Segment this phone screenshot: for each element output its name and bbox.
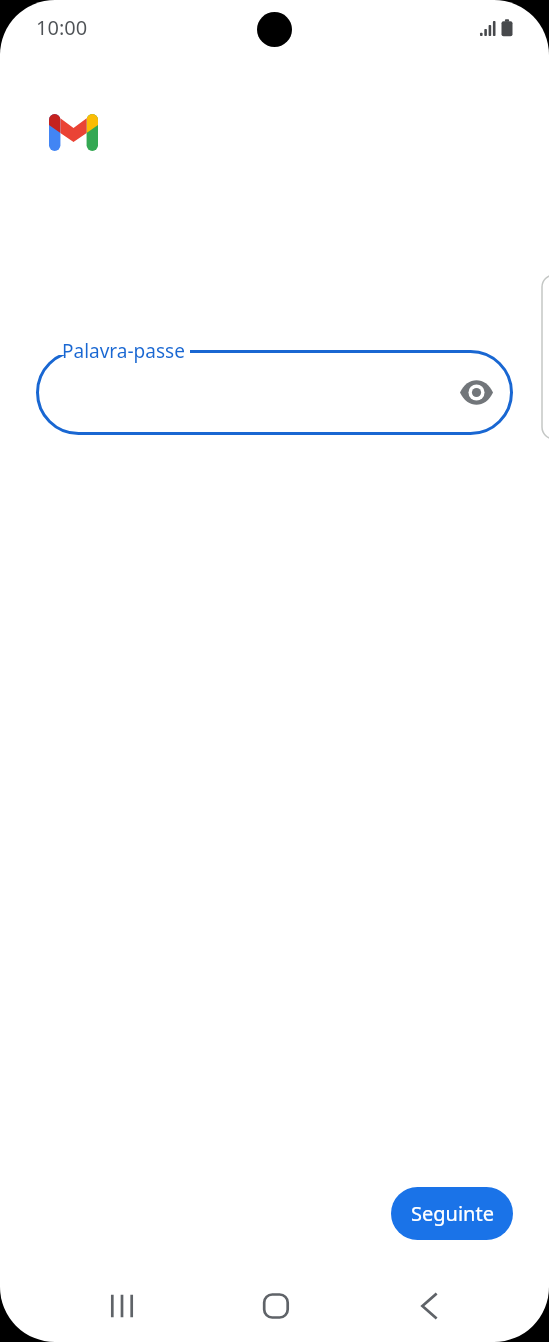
button[interactable]: Palavra-passe	[36, 326, 513, 435]
button[interactable]: Aplicacoes recentes	[94, 1278, 150, 1334]
button[interactable]: Ecra principal	[248, 1278, 304, 1334]
button[interactable]: Seguinte	[391, 1187, 513, 1240]
button[interactable]: Voltar	[401, 1278, 457, 1334]
staticText: Palavra-passe	[62, 338, 185, 364]
staticText: Seguinte	[411, 1200, 494, 1227]
button[interactable]: Mostrar palavra-passe	[452, 368, 500, 416]
staticText: 10:00	[36, 14, 88, 41]
